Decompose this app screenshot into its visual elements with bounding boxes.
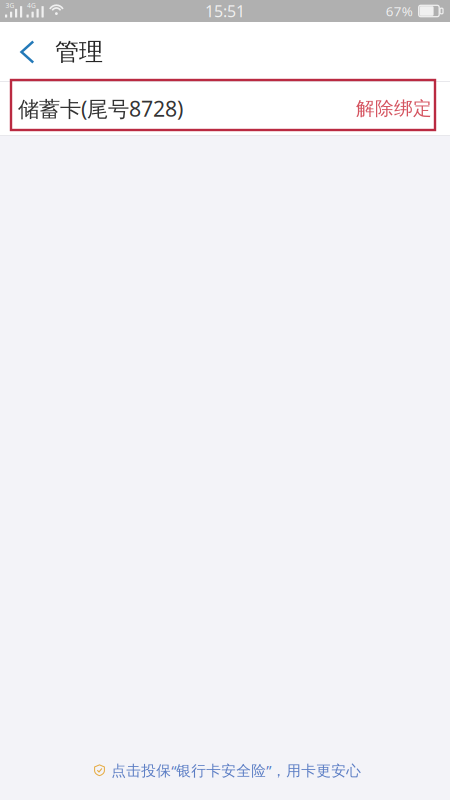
- staticText: 解除绑定: [356, 97, 432, 120]
- staticText: 储蓄卡(尾号8728): [18, 94, 183, 123]
- staticText: 67%: [386, 2, 413, 20]
- button[interactable]: 储蓄卡(尾号8728): [0, 82, 450, 135]
- staticText: 管理: [55, 37, 103, 67]
- staticText: 4G: [27, 1, 36, 10]
- staticText: 3G: [5, 1, 14, 10]
- button[interactable]: 点击投保“银行卡安全险”，用卡更安心: [77, 753, 373, 787]
- staticText: 点击投保“银行卡安全险”，用卡更安心: [111, 760, 361, 780]
- button[interactable]: Back: [0, 22, 55, 82]
- staticText: 15:51: [205, 0, 245, 22]
